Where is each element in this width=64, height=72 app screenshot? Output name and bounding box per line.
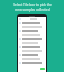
button[interactable] [18,41,46,45]
button[interactable] [18,53,46,57]
button[interactable] [18,29,46,33]
button[interactable] [18,57,46,61]
button[interactable] [18,25,46,29]
button[interactable] [18,61,46,65]
button[interactable] [18,37,46,41]
button[interactable] [18,49,46,53]
staticText: new samples collected [15,8,50,12]
staticText: Select Tile box to pick the [13,3,52,7]
button[interactable] [18,33,46,37]
button[interactable]: Confirm selection [40,68,45,70]
button[interactable] [18,45,46,49]
button[interactable] [18,21,46,25]
